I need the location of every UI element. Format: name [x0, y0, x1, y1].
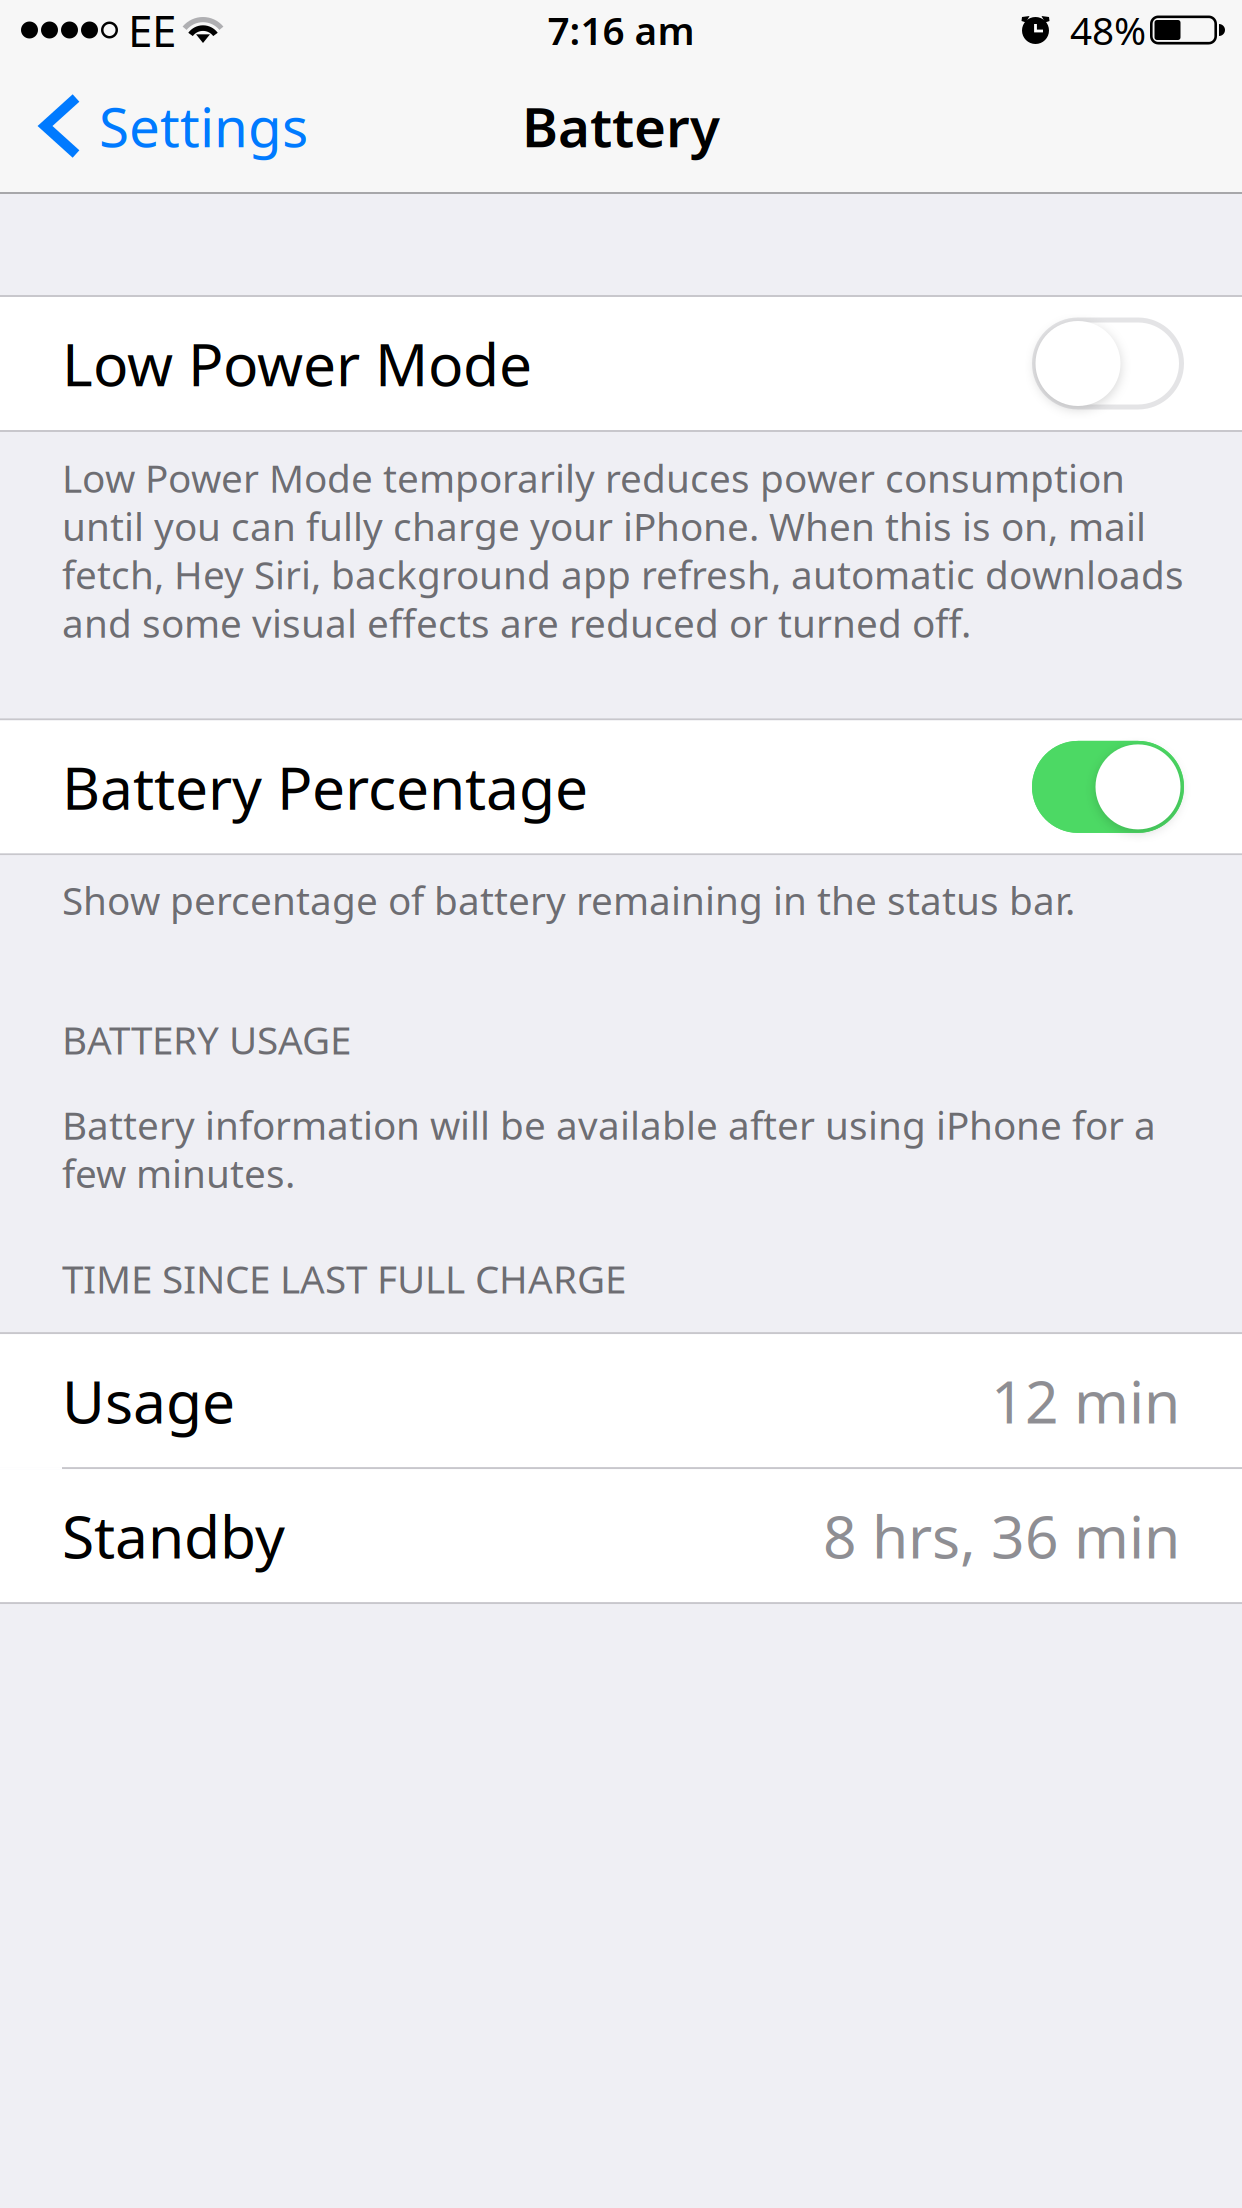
staticText: Settings [99, 90, 308, 162]
staticText: Low Power Mode [62, 324, 532, 402]
staticText: Battery Percentage [62, 748, 588, 826]
staticText: 7:16 am [547, 4, 694, 56]
staticText: Low Power Mode temporarily reduces power… [62, 452, 1184, 648]
staticText: Usage [62, 1362, 235, 1440]
staticText: 12 min [991, 1362, 1180, 1440]
staticText: EE [128, 1, 176, 59]
staticText: TIME SINCE LAST FULL CHARGE [62, 1253, 626, 1304]
button[interactable]: Standby [0, 1469, 1242, 1602]
staticText: 48% [1070, 4, 1146, 56]
staticText: Battery [522, 90, 720, 162]
button[interactable]: Low Power Mode [0, 297, 1242, 430]
staticText: BATTERY USAGE [62, 1014, 351, 1065]
staticText: Standby [62, 1497, 285, 1575]
staticText: Battery information will be available af… [62, 1099, 1156, 1199]
staticText: Show percentage of battery remaining in … [62, 874, 1075, 926]
button[interactable]: Back to Settings [0, 60, 328, 192]
staticText: 8 hrs, 36 min [823, 1497, 1180, 1575]
button[interactable]: Battery Percentage [0, 720, 1242, 853]
button[interactable]: Usage [0, 1334, 1242, 1467]
